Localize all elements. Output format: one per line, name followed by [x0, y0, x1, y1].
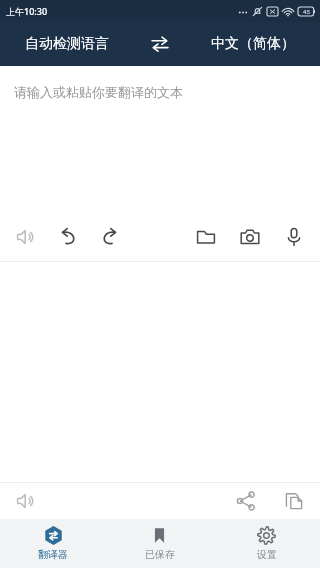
- staticText: 已保存: [145, 548, 175, 561]
- staticText: 中文（简体）: [211, 35, 295, 53]
- button[interactable]: Camera: [234, 221, 266, 253]
- button[interactable]: Share: [230, 485, 262, 517]
- staticText: 请输入或粘贴你要翻译的文本: [14, 84, 183, 100]
- button[interactable]: 中文（简体）: [186, 22, 320, 66]
- button[interactable]: 设置: [213, 519, 320, 568]
- button[interactable]: Swap languages: [134, 22, 186, 66]
- button[interactable]: 自动检测语言: [0, 22, 134, 66]
- staticText: 设置: [257, 548, 277, 561]
- staticText: 45: [303, 8, 310, 16]
- button[interactable]: Listen translation: [10, 485, 42, 517]
- button[interactable]: 已保存: [106, 519, 213, 568]
- staticText: 自动检测语言: [25, 35, 109, 53]
- button[interactable]: Redo: [94, 221, 126, 253]
- staticText: 翻译器: [38, 548, 68, 561]
- button[interactable]: Open file: [190, 221, 222, 253]
- button[interactable]: Undo: [52, 221, 84, 253]
- button[interactable]: Copy: [278, 485, 310, 517]
- button[interactable]: 翻译器: [0, 519, 106, 568]
- button[interactable]: Microphone: [278, 221, 310, 253]
- staticText: 上午10:30: [6, 5, 48, 17]
- button[interactable]: Listen: [10, 221, 42, 253]
